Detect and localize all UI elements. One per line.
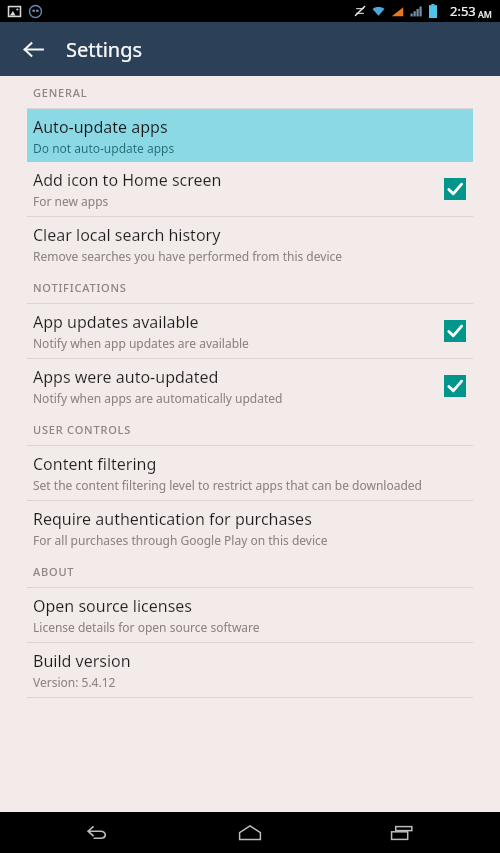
button[interactable]: Toggle setting bbox=[437, 313, 473, 349]
staticText: Do not auto-update apps bbox=[33, 140, 175, 156]
staticText: NOTIFICATIONS bbox=[33, 280, 127, 295]
staticText: Add icon to Home screen bbox=[33, 169, 222, 191]
staticText: For new apps bbox=[33, 193, 109, 209]
staticText: USER CONTROLS bbox=[33, 422, 132, 437]
button[interactable]: Auto-update apps bbox=[27, 109, 473, 162]
button[interactable]: Recent apps bbox=[348, 812, 458, 853]
staticText: Require authentication for purchases bbox=[33, 508, 312, 530]
staticText: Apps were auto-updated bbox=[33, 366, 219, 388]
button[interactable]: Content filtering bbox=[0, 446, 500, 500]
staticText: Auto-update apps bbox=[33, 116, 168, 138]
button[interactable]: Toggle setting bbox=[437, 368, 473, 404]
staticText: Open source licenses bbox=[33, 595, 192, 617]
button[interactable]: Apps were auto-updated bbox=[0, 359, 500, 413]
staticText: Clear local search history bbox=[33, 224, 221, 246]
staticText: Content filtering bbox=[33, 453, 157, 475]
staticText: Set the content filtering level to restr… bbox=[33, 477, 422, 493]
staticText: For all purchases through Google Play on… bbox=[33, 532, 328, 548]
staticText: ABOUT bbox=[33, 564, 75, 579]
button[interactable]: Add icon to Home screen bbox=[0, 162, 500, 216]
button[interactable]: Require authentication for purchases bbox=[0, 501, 500, 555]
staticText: Notify when apps are automatically updat… bbox=[33, 390, 283, 406]
staticText: 2:53 bbox=[450, 2, 476, 20]
button[interactable]: Home bbox=[195, 812, 305, 853]
staticText: Build version bbox=[33, 650, 131, 672]
staticText: App updates available bbox=[33, 311, 199, 333]
staticText: GENERAL bbox=[33, 85, 88, 100]
button[interactable]: Back bbox=[43, 812, 153, 853]
staticText: Version: 5.4.12 bbox=[33, 674, 116, 690]
button[interactable]: Toggle setting bbox=[437, 171, 473, 207]
staticText: Settings bbox=[66, 36, 143, 63]
staticText: Notify when app updates are available bbox=[33, 335, 249, 351]
button[interactable]: Build version bbox=[0, 643, 500, 697]
staticText: License details for open source software bbox=[33, 619, 260, 635]
staticText: Remove searches you have performed from … bbox=[33, 248, 343, 264]
button[interactable]: Navigate up bbox=[12, 28, 54, 70]
button[interactable]: Clear local search history bbox=[0, 217, 500, 271]
button[interactable]: App updates available bbox=[0, 304, 500, 358]
button[interactable]: Open source licenses bbox=[0, 588, 500, 642]
staticText: AM bbox=[478, 8, 492, 20]
